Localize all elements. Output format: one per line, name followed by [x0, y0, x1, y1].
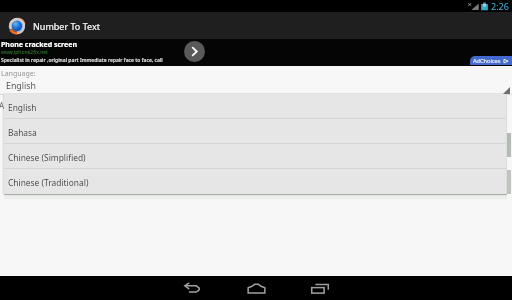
staticText: Chinese (Simplified): [8, 152, 86, 163]
staticText: Chinese (Traditional): [8, 177, 89, 188]
staticText: AdChoices: [473, 57, 501, 65]
staticText: Bahasa: [8, 127, 37, 138]
staticText: Specialist in repair ,original part Imme…: [1, 56, 163, 64]
button[interactable]: Back: [178, 276, 206, 300]
staticText: www.iphone2fix.net: [1, 49, 48, 56]
staticText: 2:26: [491, 0, 509, 12]
button[interactable]: Chinese (Simplified): [4, 144, 507, 169]
staticText: Phone cracked screen: [1, 40, 78, 50]
button[interactable]: Open advertisement: [184, 41, 205, 62]
staticText: A: [0, 100, 5, 111]
button[interactable]: AdChoices: [470, 56, 512, 65]
staticText: Language:: [1, 69, 36, 79]
staticText: Number To Text: [33, 20, 100, 32]
button[interactable]: Home: [242, 276, 270, 300]
staticText: English: [6, 80, 36, 92]
button[interactable]: Chinese (Traditional): [4, 169, 507, 194]
button[interactable]: English: [4, 94, 507, 119]
button[interactable]: Recent apps: [306, 276, 334, 300]
button[interactable]: Language spinner, English: [0, 79, 512, 95]
button[interactable]: Bahasa: [4, 119, 507, 144]
staticText: English: [8, 102, 37, 113]
